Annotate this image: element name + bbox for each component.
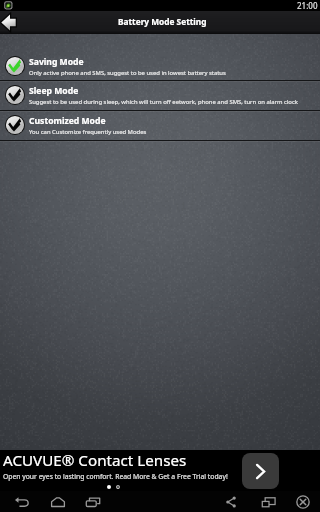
staticText: Battery Mode Setting (118, 16, 207, 27)
staticText: Open your eyes to lasting comfort. Read … (3, 472, 228, 481)
button[interactable]: Saving Mode (0, 54, 320, 80)
button[interactable]: Recent apps (82, 491, 103, 512)
staticText: Saving Mode (29, 56, 84, 68)
button[interactable]: Close (292, 491, 313, 512)
staticText: ACUVUE® Contact Lenses (3, 450, 187, 471)
staticText: You can Customize frequently used Modes (29, 128, 147, 136)
button[interactable]: Next ad (242, 453, 279, 489)
button[interactable]: Back (0, 11, 22, 34)
staticText: Only active phone and SMS, suggest to be… (29, 69, 226, 77)
staticText: 21:00 (297, 0, 318, 11)
staticText: Sleep Mode (29, 85, 79, 97)
button[interactable]: Sleep Mode (0, 82, 320, 110)
staticText: Suggest to be used during sleep, which w… (29, 98, 298, 106)
button[interactable]: Share (220, 491, 241, 512)
button[interactable]: Back (11, 491, 32, 512)
staticText: Customized Mode (29, 115, 106, 127)
button[interactable]: Split screen (258, 491, 279, 512)
button[interactable]: Customized Mode (0, 112, 320, 140)
button[interactable]: Home (47, 491, 68, 512)
